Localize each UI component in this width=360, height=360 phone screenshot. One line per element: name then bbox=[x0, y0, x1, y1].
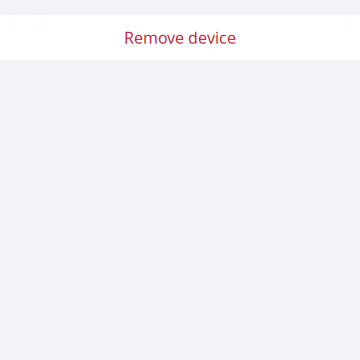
staticText: 9:41 bbox=[5, 8, 50, 38]
staticText: Remove device bbox=[124, 27, 236, 48]
button[interactable]: Remove device bbox=[0, 15, 360, 60]
